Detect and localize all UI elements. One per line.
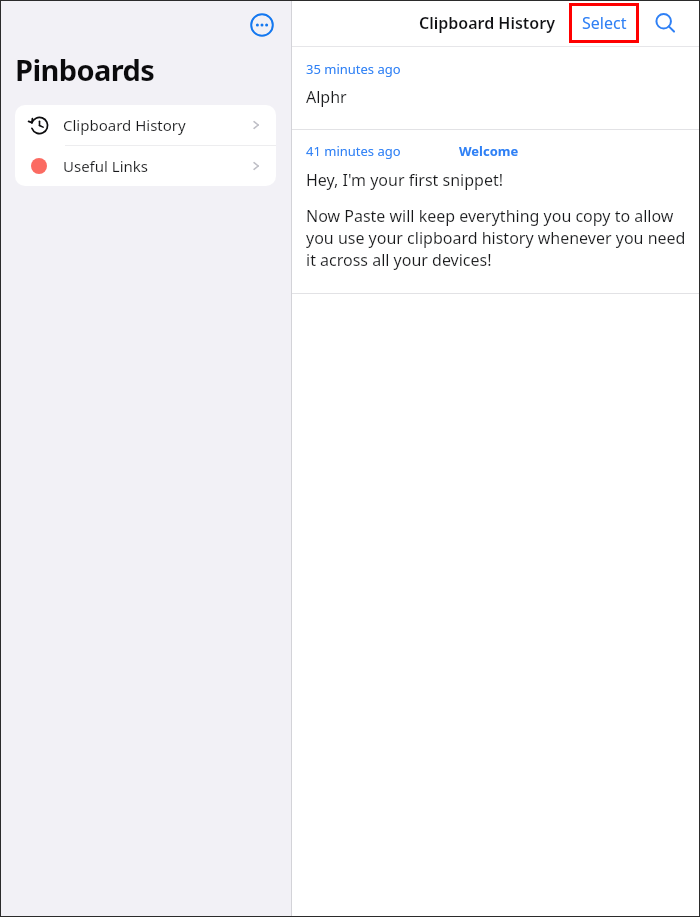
staticText: Pinboards bbox=[15, 50, 155, 89]
button[interactable]: 41 minutes ago bbox=[292, 130, 700, 293]
button[interactable]: Useful Links bbox=[15, 146, 276, 186]
staticText: Alphr bbox=[306, 86, 347, 108]
staticText: Welcome bbox=[459, 142, 519, 160]
staticText: Now Paste will keep everything you copy … bbox=[306, 205, 686, 271]
button[interactable]: Clipboard History bbox=[15, 105, 276, 145]
staticText: 41 minutes ago bbox=[306, 142, 401, 160]
button[interactable]: More options bbox=[248, 11, 276, 39]
staticText: Useful Links bbox=[63, 156, 249, 176]
button[interactable]: Search bbox=[648, 6, 682, 40]
staticText: Clipboard History bbox=[419, 12, 555, 34]
staticText: Clipboard History bbox=[63, 115, 249, 135]
staticText: Select bbox=[582, 12, 627, 34]
staticText: Hey, I'm your first snippet! bbox=[306, 169, 503, 191]
staticText: 35 minutes ago bbox=[306, 60, 401, 78]
button[interactable]: Select bbox=[569, 3, 639, 43]
button[interactable]: 35 minutes ago bbox=[292, 47, 700, 129]
